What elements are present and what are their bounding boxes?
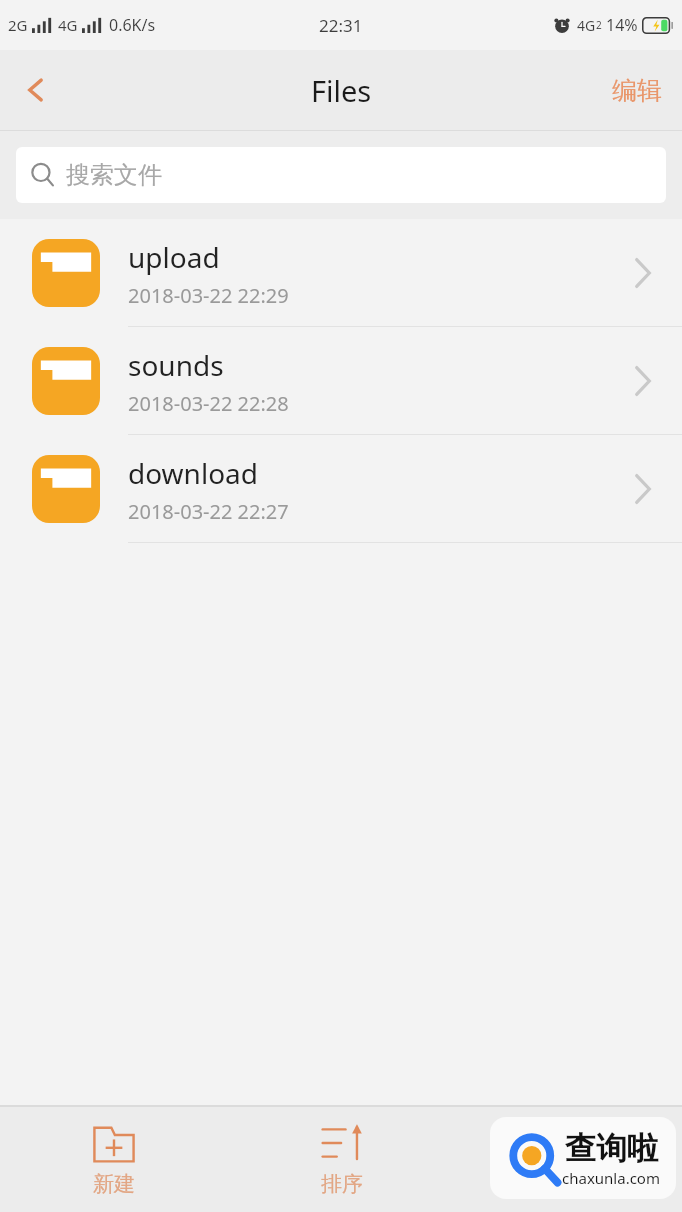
button[interactable]: 新建: [0, 1107, 228, 1212]
staticText: 查询啦: [565, 1129, 658, 1168]
staticText: download: [128, 454, 259, 492]
button[interactable]: Back: [0, 54, 72, 126]
staticText: 2018-03-22 22:28: [128, 390, 289, 417]
button[interactable]: download: [0, 435, 682, 543]
staticText: 编辑: [612, 75, 662, 106]
staticText: 刷新: [548, 1171, 590, 1197]
staticText: 2018-03-22 22:27: [128, 498, 289, 525]
staticText: chaxunla.com: [562, 1168, 660, 1188]
staticText: 排序: [321, 1171, 363, 1197]
button[interactable]: 刷新: [455, 1107, 682, 1212]
staticText: 4G: [58, 15, 78, 35]
staticText: sounds: [128, 346, 224, 384]
staticText: 2: [596, 18, 602, 32]
button[interactable]: sounds: [0, 327, 682, 435]
staticText: 14%: [606, 14, 638, 36]
staticText: upload: [128, 238, 220, 276]
staticText: 2018-03-22 22:29: [128, 282, 289, 309]
button[interactable]: upload: [0, 219, 682, 327]
button[interactable]: 排序: [228, 1107, 455, 1212]
staticText: 0.6K/s: [109, 14, 156, 36]
button[interactable]: 搜索文件: [16, 147, 666, 203]
staticText: 4G: [577, 16, 596, 35]
staticText: 搜索文件: [66, 160, 162, 190]
staticText: 22:31: [319, 14, 363, 37]
button[interactable]: 编辑: [592, 50, 682, 130]
staticText: 2G: [8, 15, 28, 35]
staticText: Files: [311, 71, 372, 110]
staticText: 新建: [93, 1171, 135, 1197]
